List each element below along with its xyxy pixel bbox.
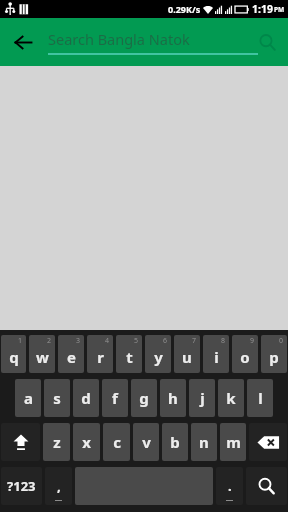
button[interactable]: n bbox=[191, 423, 217, 461]
staticText: e bbox=[67, 347, 76, 367]
button[interactable]: Delete bbox=[249, 423, 287, 461]
staticText: j bbox=[200, 388, 205, 408]
button[interactable]: Search bbox=[246, 467, 287, 505]
staticText: 9 bbox=[250, 336, 255, 346]
button[interactable]: i bbox=[203, 335, 229, 373]
staticText: v bbox=[142, 432, 151, 452]
staticText: d bbox=[81, 388, 91, 408]
button[interactable]: h bbox=[160, 379, 186, 417]
staticText: x bbox=[82, 432, 91, 452]
staticText: r bbox=[97, 347, 104, 367]
staticText: m bbox=[226, 432, 241, 452]
button[interactable]: m bbox=[220, 423, 246, 461]
staticText: . bbox=[228, 477, 232, 495]
button[interactable]: g bbox=[131, 379, 157, 417]
staticText: a bbox=[24, 388, 33, 408]
button[interactable]: Shift bbox=[1, 423, 40, 461]
button[interactable]: o bbox=[232, 335, 258, 373]
staticText: 1:19 bbox=[252, 2, 273, 16]
staticText: l bbox=[258, 388, 263, 408]
staticText: , bbox=[57, 477, 61, 495]
button[interactable]: Symbols bbox=[1, 467, 42, 505]
staticText: z bbox=[53, 432, 61, 452]
staticText: k bbox=[226, 388, 236, 408]
button[interactable]: Comma bbox=[45, 467, 72, 505]
staticText: 5 bbox=[134, 336, 139, 346]
button[interactable]: q bbox=[1, 335, 26, 373]
button[interactable]: Navigate up bbox=[6, 25, 40, 59]
staticText: 0.29K/s bbox=[168, 3, 201, 15]
button[interactable]: Search Bangla Natok bbox=[48, 29, 258, 55]
staticText: h bbox=[168, 388, 178, 408]
staticText: n bbox=[199, 432, 209, 452]
staticText: 8 bbox=[221, 336, 226, 346]
button[interactable]: f bbox=[102, 379, 128, 417]
button[interactable]: d bbox=[73, 379, 99, 417]
staticText: PM bbox=[274, 5, 285, 14]
button[interactable]: u bbox=[174, 335, 200, 373]
staticText: 1 bbox=[18, 336, 23, 346]
button[interactable]: p bbox=[261, 335, 287, 373]
button[interactable]: Period bbox=[216, 467, 243, 505]
button[interactable]: r bbox=[87, 335, 113, 373]
button[interactable]: s bbox=[44, 379, 70, 417]
button[interactable]: e bbox=[58, 335, 84, 373]
staticText: c bbox=[113, 432, 121, 452]
button[interactable]: z bbox=[43, 423, 70, 461]
staticText: 4 bbox=[105, 336, 110, 346]
staticText: t bbox=[126, 347, 133, 367]
staticText: w bbox=[36, 347, 49, 367]
button[interactable]: l bbox=[247, 379, 273, 417]
staticText: o bbox=[240, 347, 250, 367]
button[interactable]: x bbox=[73, 423, 100, 461]
button[interactable]: t bbox=[116, 335, 142, 373]
staticText: 2 bbox=[47, 336, 52, 346]
staticText: 7 bbox=[192, 336, 197, 346]
staticText: u bbox=[182, 347, 192, 367]
staticText: f bbox=[112, 388, 118, 408]
button[interactable]: j bbox=[189, 379, 215, 417]
button[interactable]: y bbox=[145, 335, 171, 373]
staticText: s bbox=[53, 388, 61, 408]
button[interactable]: c bbox=[103, 423, 130, 461]
staticText: i bbox=[214, 347, 219, 367]
button[interactable]: b bbox=[162, 423, 188, 461]
staticText: y bbox=[154, 347, 163, 367]
staticText: p bbox=[269, 347, 279, 367]
staticText: Search Bangla Natok bbox=[48, 29, 190, 49]
button[interactable]: w bbox=[29, 335, 55, 373]
staticText: 3 bbox=[76, 336, 81, 346]
staticText: q bbox=[9, 347, 19, 367]
button[interactable]: a bbox=[15, 379, 41, 417]
staticText: 0 bbox=[279, 336, 284, 346]
button[interactable]: Search bbox=[250, 25, 284, 59]
button[interactable]: k bbox=[218, 379, 244, 417]
staticText: b bbox=[170, 432, 180, 452]
staticText: g bbox=[139, 388, 149, 408]
staticText: 6 bbox=[163, 336, 168, 346]
staticText: ?123 bbox=[7, 477, 36, 495]
button[interactable]: v bbox=[133, 423, 159, 461]
